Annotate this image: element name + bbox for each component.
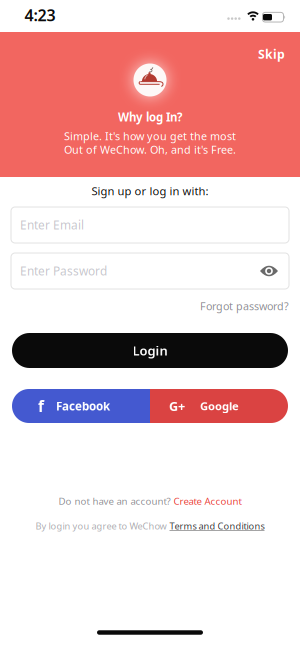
- staticText: Forgot password?: [200, 299, 289, 313]
- staticText: G+: [169, 397, 185, 415]
- button[interactable]: G+: [150, 389, 288, 423]
- staticText: Enter Email: [20, 217, 84, 233]
- staticText: f: [38, 396, 44, 416]
- button[interactable]: Login: [12, 333, 288, 368]
- staticText: Enter Password: [20, 263, 107, 279]
- staticText: Terms and Conditions: [169, 520, 264, 532]
- staticText: Out of WeChow. Oh, and it's Free.: [64, 142, 236, 157]
- button[interactable]: Terms and Conditions: [169, 520, 264, 532]
- staticText: Create Account: [173, 494, 241, 508]
- button[interactable]: Create Account: [173, 494, 241, 508]
- staticText: 4:23: [24, 4, 55, 26]
- staticText: Login: [132, 342, 167, 359]
- button[interactable]: Show password: [259, 263, 279, 279]
- staticText: Why log In?: [118, 109, 182, 125]
- staticText: Sign up or log in with:: [91, 183, 208, 199]
- staticText: By login you agree to WeChow: [35, 520, 166, 532]
- staticText: Skip: [258, 46, 285, 62]
- button[interactable]: f: [12, 389, 150, 423]
- button[interactable]: Forgot password?: [198, 297, 291, 315]
- staticText: Facebook: [56, 398, 110, 414]
- staticText: Simple. It's how you get the most: [64, 129, 236, 143]
- staticText: Google: [200, 398, 239, 414]
- staticText: Do not have an account?: [58, 494, 170, 508]
- button[interactable]: Skip: [254, 42, 289, 66]
